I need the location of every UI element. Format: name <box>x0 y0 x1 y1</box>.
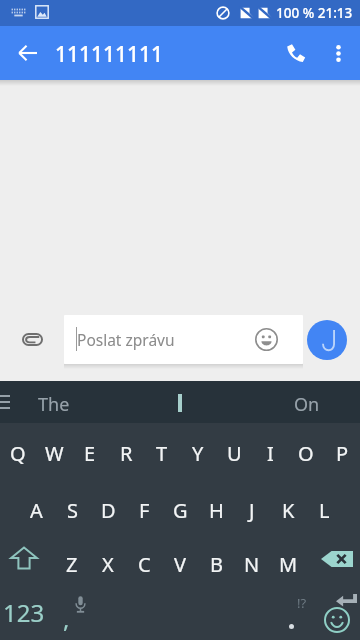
button[interactable]: Attach file <box>12 319 52 359</box>
staticText: P <box>336 440 349 467</box>
staticText: G <box>173 497 188 524</box>
button[interactable]: 123 <box>0 591 48 640</box>
staticText: I <box>267 440 274 467</box>
staticText: O <box>298 440 314 467</box>
staticText: R <box>120 440 133 467</box>
button[interactable]: P <box>324 423 360 483</box>
staticText: Y <box>192 440 204 467</box>
button[interactable]: G <box>162 483 198 537</box>
button[interactable]: Enter <box>312 591 360 640</box>
button[interactable]: J <box>234 483 270 537</box>
staticText: 100 % 21:13 <box>276 4 353 22</box>
staticText: W <box>45 440 64 467</box>
button[interactable]: The <box>38 392 70 417</box>
button[interactable]: V <box>162 537 198 591</box>
staticText: S <box>67 497 78 524</box>
button[interactable]: Y <box>180 423 216 483</box>
staticText: T <box>156 440 168 467</box>
button[interactable]: Back <box>5 31 49 75</box>
button[interactable]: T <box>144 423 180 483</box>
button[interactable]: Send <box>307 320 347 360</box>
staticText: Q <box>10 440 26 467</box>
button[interactable]: Period and symbols <box>264 591 312 640</box>
staticText: L <box>319 497 330 524</box>
staticText: U <box>227 440 242 467</box>
button[interactable]: O <box>288 423 324 483</box>
staticText: A <box>30 497 43 524</box>
button[interactable]: Keyboard options <box>0 381 28 423</box>
staticText: X <box>102 551 114 578</box>
button[interactable]: I <box>252 423 288 483</box>
staticText: C <box>138 551 151 578</box>
staticText: H <box>209 497 224 524</box>
staticText: Z <box>66 551 78 578</box>
staticText: D <box>101 497 116 524</box>
staticText: N <box>244 551 260 578</box>
button[interactable]: D <box>90 483 126 537</box>
button[interactable]: More options <box>316 31 360 75</box>
button[interactable]: F <box>126 483 162 537</box>
button[interactable]: X <box>90 537 126 591</box>
staticText: E <box>84 440 96 467</box>
button[interactable]: C <box>126 537 162 591</box>
staticText: 123 <box>3 596 45 629</box>
button[interactable]: A <box>18 483 54 537</box>
button[interactable]: Emoji <box>246 319 287 360</box>
button[interactable]: Poslat zprávu <box>64 315 303 364</box>
button[interactable]: Call <box>274 31 318 75</box>
button[interactable]: On <box>294 392 320 417</box>
button[interactable]: B <box>198 537 234 591</box>
staticText: , <box>63 602 70 635</box>
staticText: K <box>282 497 295 524</box>
button[interactable]: H <box>198 483 234 537</box>
button[interactable]: N <box>234 537 270 591</box>
staticText: !? <box>297 594 307 612</box>
button[interactable]: Z <box>54 537 90 591</box>
staticText: F <box>139 497 150 524</box>
button[interactable]: M <box>270 537 306 591</box>
staticText: V <box>174 551 186 578</box>
staticText: Poslat zprávu <box>77 329 175 350</box>
staticText: M <box>279 551 298 578</box>
button[interactable]: L <box>306 483 342 537</box>
staticText: B <box>210 551 223 578</box>
button[interactable]: U <box>216 423 252 483</box>
button[interactable]: R <box>108 423 144 483</box>
button[interactable]: W <box>36 423 72 483</box>
staticText: J <box>249 497 255 524</box>
button[interactable]: Shift <box>0 537 54 591</box>
button[interactable]: S <box>54 483 90 537</box>
button[interactable]: Q <box>0 423 36 483</box>
button[interactable]: Comma, voice input <box>48 591 108 640</box>
button[interactable]: E <box>72 423 108 483</box>
staticText: 111111111 <box>55 40 164 69</box>
button[interactable]: K <box>270 483 306 537</box>
button[interactable]: Backspace <box>306 537 360 591</box>
